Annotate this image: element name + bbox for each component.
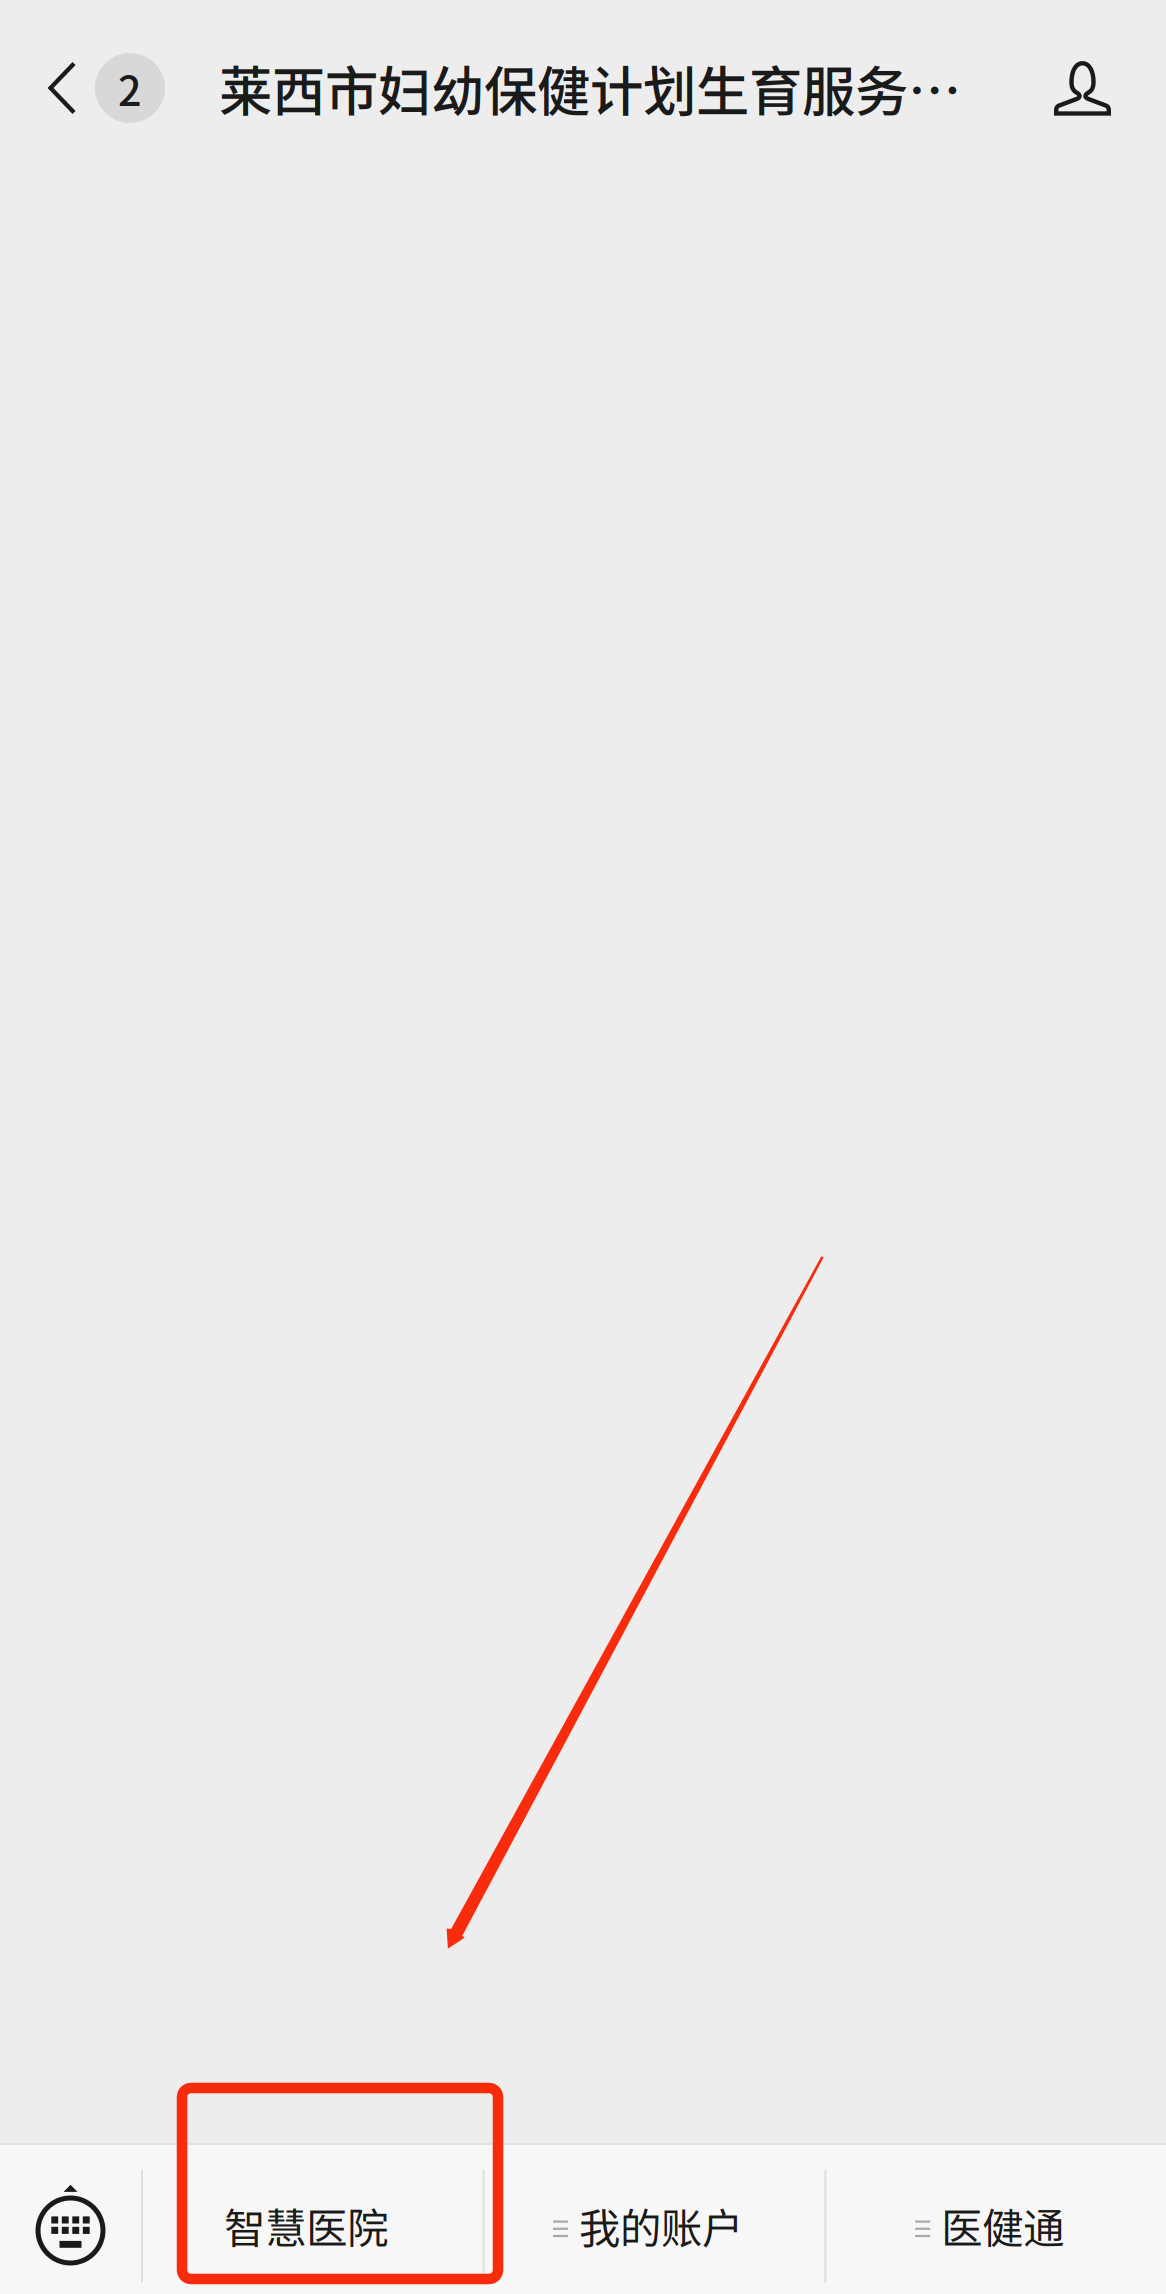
staticText: 医健通 [941, 2196, 1064, 2255]
button[interactable]: Back, 2 unread [0, 0, 175, 176]
staticText: 莱西市妇幼保健计划生育服务… [219, 49, 961, 127]
button[interactable]: 我的账户 [485, 2143, 824, 2294]
button[interactable]: Switch to keyboard [0, 2143, 141, 2294]
button[interactable]: Official account profile [1001, 0, 1166, 176]
button[interactable]: 医健通 [826, 2143, 1166, 2294]
button[interactable]: 智慧医院 [143, 2143, 483, 2294]
staticText: 2 [118, 58, 142, 118]
staticText: 智慧医院 [224, 2196, 388, 2255]
staticText: 我的账户 [579, 2196, 743, 2255]
